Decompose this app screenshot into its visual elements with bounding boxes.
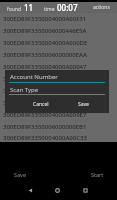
button[interactable]: actions: [90, 2, 113, 13]
staticText: actions: [93, 4, 110, 11]
button[interactable]: Cancel: [29, 98, 53, 111]
button[interactable]: 300ED89F3350006000446E11: [0, 97, 117, 108]
button[interactable]: 300ED89F3350004000A00D47: [0, 85, 117, 96]
staticText: 300ED89F3350006000000EB1: [3, 123, 87, 131]
staticText: 300ED89F3350004000A00047: [3, 63, 87, 71]
button[interactable]: time: [41, 2, 81, 13]
staticText: 300ED89F3350004000A009E7: [3, 111, 87, 119]
staticText: Start: [91, 171, 104, 178]
button[interactable]: 300ED89F3350004000A00F31: [0, 13, 117, 24]
staticText: Save: [78, 101, 89, 108]
button[interactable]: 300ED89F3350004000A000DE: [0, 37, 117, 48]
staticText: 300ED89F3350004000A00C33: [3, 134, 87, 142]
staticText: 300ED89F3350006000000EAA: [3, 51, 87, 59]
staticText: 300ED89F3350006000000A4F: [3, 75, 87, 83]
staticText: 300ED89F3350006000446E11: [3, 99, 86, 107]
staticText: 300ED89F3350004000A000DE: [3, 39, 88, 47]
staticText: time: [44, 6, 55, 13]
button[interactable]: 300ED89F3350004000A009E7: [0, 109, 117, 120]
staticText: Save: [14, 171, 27, 178]
button[interactable]: Save: [74, 98, 93, 111]
staticText: 300ED89F3350004000A00F31: [3, 15, 87, 23]
button[interactable]: Start: [77, 167, 117, 181]
button[interactable]: Back: [17, 183, 43, 197]
staticText: Scan Type: [10, 86, 39, 94]
staticText: 11: [24, 2, 34, 13]
button[interactable]: found: [4, 2, 37, 13]
staticText: 300ED89F3350006000446E5A: [3, 27, 87, 35]
button[interactable]: 300ED89F3350006000000A4F: [0, 73, 117, 84]
button[interactable]: 300ED89F3350006000000EAA: [0, 49, 117, 60]
button[interactable]: 300ED89F3350004000A00C33: [0, 133, 117, 142]
button[interactable]: Recents: [71, 183, 99, 197]
button[interactable]: 300ED89F3350006000446E5A: [0, 25, 117, 36]
staticText: Cancel: [33, 101, 49, 108]
staticText: 300ED89F3350004000A00D47: [3, 87, 88, 95]
staticText: found: [7, 6, 22, 13]
button[interactable]: 300ED89F3350006000000EB1: [0, 121, 117, 132]
staticText: Account Number: [10, 73, 58, 81]
button[interactable]: Save: [0, 167, 40, 181]
button[interactable]: Home: [43, 183, 71, 197]
button[interactable]: 300ED89F3350004000A00047: [0, 61, 117, 72]
staticText: 00:07: [57, 2, 78, 13]
